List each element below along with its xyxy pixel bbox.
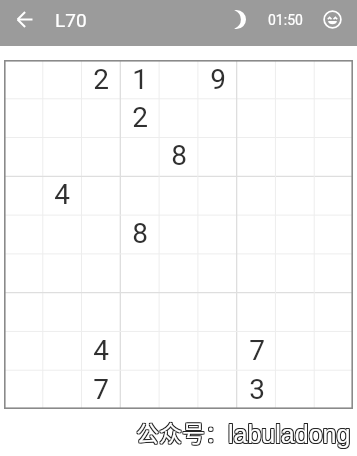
button[interactable] (42, 292, 80, 331)
button[interactable] (236, 253, 275, 292)
button[interactable] (314, 253, 353, 292)
button[interactable] (119, 370, 158, 409)
button[interactable] (80, 98, 119, 136)
button[interactable]: 7 (80, 370, 119, 409)
button[interactable] (197, 136, 236, 175)
button[interactable] (42, 370, 80, 409)
button[interactable] (197, 331, 236, 370)
button[interactable] (158, 60, 197, 98)
staticText: 8 (171, 139, 187, 172)
button[interactable] (275, 175, 314, 214)
button[interactable] (4, 214, 42, 253)
button[interactable] (4, 292, 42, 331)
button[interactable] (42, 60, 80, 98)
button[interactable] (275, 253, 314, 292)
button[interactable] (236, 175, 275, 214)
staticText: 公众号： (135, 414, 227, 447)
button[interactable]: 8 (119, 214, 158, 253)
button[interactable] (275, 292, 314, 331)
button[interactable]: 7 (236, 331, 275, 370)
button[interactable]: 2 (119, 98, 158, 136)
button[interactable] (236, 60, 275, 98)
button[interactable] (4, 331, 42, 370)
button[interactable]: 2 (80, 60, 119, 98)
button[interactable] (119, 175, 158, 214)
button[interactable] (314, 370, 353, 409)
button[interactable] (4, 370, 42, 409)
button[interactable]: 1 (119, 60, 158, 98)
button[interactable] (236, 214, 275, 253)
staticText: labuladong (228, 420, 351, 448)
button[interactable] (158, 175, 197, 214)
button[interactable] (4, 60, 42, 98)
staticText: 公众号： (136, 416, 228, 449)
staticText: 公众号： (137, 414, 229, 447)
button[interactable] (314, 175, 353, 214)
button[interactable] (80, 136, 119, 175)
button[interactable] (42, 136, 80, 175)
button[interactable] (275, 136, 314, 175)
button[interactable] (119, 253, 158, 292)
button[interactable] (236, 136, 275, 175)
button[interactable] (314, 214, 353, 253)
button[interactable] (4, 136, 42, 175)
button[interactable] (197, 292, 236, 331)
button[interactable]: 4 (80, 331, 119, 370)
staticText: 公众号： (135, 416, 227, 449)
button[interactable]: 4 (42, 175, 80, 214)
button[interactable] (275, 331, 314, 370)
button[interactable] (314, 292, 353, 331)
button[interactable] (275, 214, 314, 253)
button[interactable] (314, 98, 353, 136)
button[interactable] (80, 175, 119, 214)
staticText: 4 (93, 334, 109, 367)
button[interactable] (275, 370, 314, 409)
button[interactable]: 9 (197, 60, 236, 98)
staticText: labuladong (227, 420, 350, 448)
button[interactable] (275, 60, 314, 98)
button[interactable]: Hint (319, 0, 345, 39)
button[interactable] (158, 370, 197, 409)
staticText: 3 (249, 373, 265, 406)
button[interactable] (42, 98, 80, 136)
staticText: 7 (93, 373, 109, 406)
button[interactable] (80, 292, 119, 331)
button[interactable] (119, 136, 158, 175)
button[interactable] (80, 253, 119, 292)
staticText: L70 (55, 9, 87, 31)
button[interactable]: 8 (158, 136, 197, 175)
staticText: 1 (132, 63, 148, 96)
button[interactable] (314, 60, 353, 98)
button[interactable] (236, 98, 275, 136)
button[interactable] (158, 331, 197, 370)
staticText: labuladong (229, 421, 352, 449)
button[interactable] (80, 214, 119, 253)
button[interactable] (4, 253, 42, 292)
button[interactable] (119, 331, 158, 370)
button[interactable]: 3 (236, 370, 275, 409)
button[interactable] (236, 292, 275, 331)
button[interactable] (158, 292, 197, 331)
button[interactable] (42, 331, 80, 370)
button[interactable] (4, 98, 42, 136)
staticText: 7 (249, 334, 265, 367)
button[interactable] (275, 98, 314, 136)
staticText: labuladong (228, 419, 351, 447)
staticText: labuladong (227, 419, 350, 447)
button[interactable] (119, 292, 158, 331)
button[interactable] (314, 136, 353, 175)
button[interactable] (197, 175, 236, 214)
button[interactable] (197, 370, 236, 409)
button[interactable] (314, 331, 353, 370)
button[interactable]: Back (0, 0, 49, 39)
button[interactable] (4, 175, 42, 214)
button[interactable]: Night mode (226, 0, 252, 39)
